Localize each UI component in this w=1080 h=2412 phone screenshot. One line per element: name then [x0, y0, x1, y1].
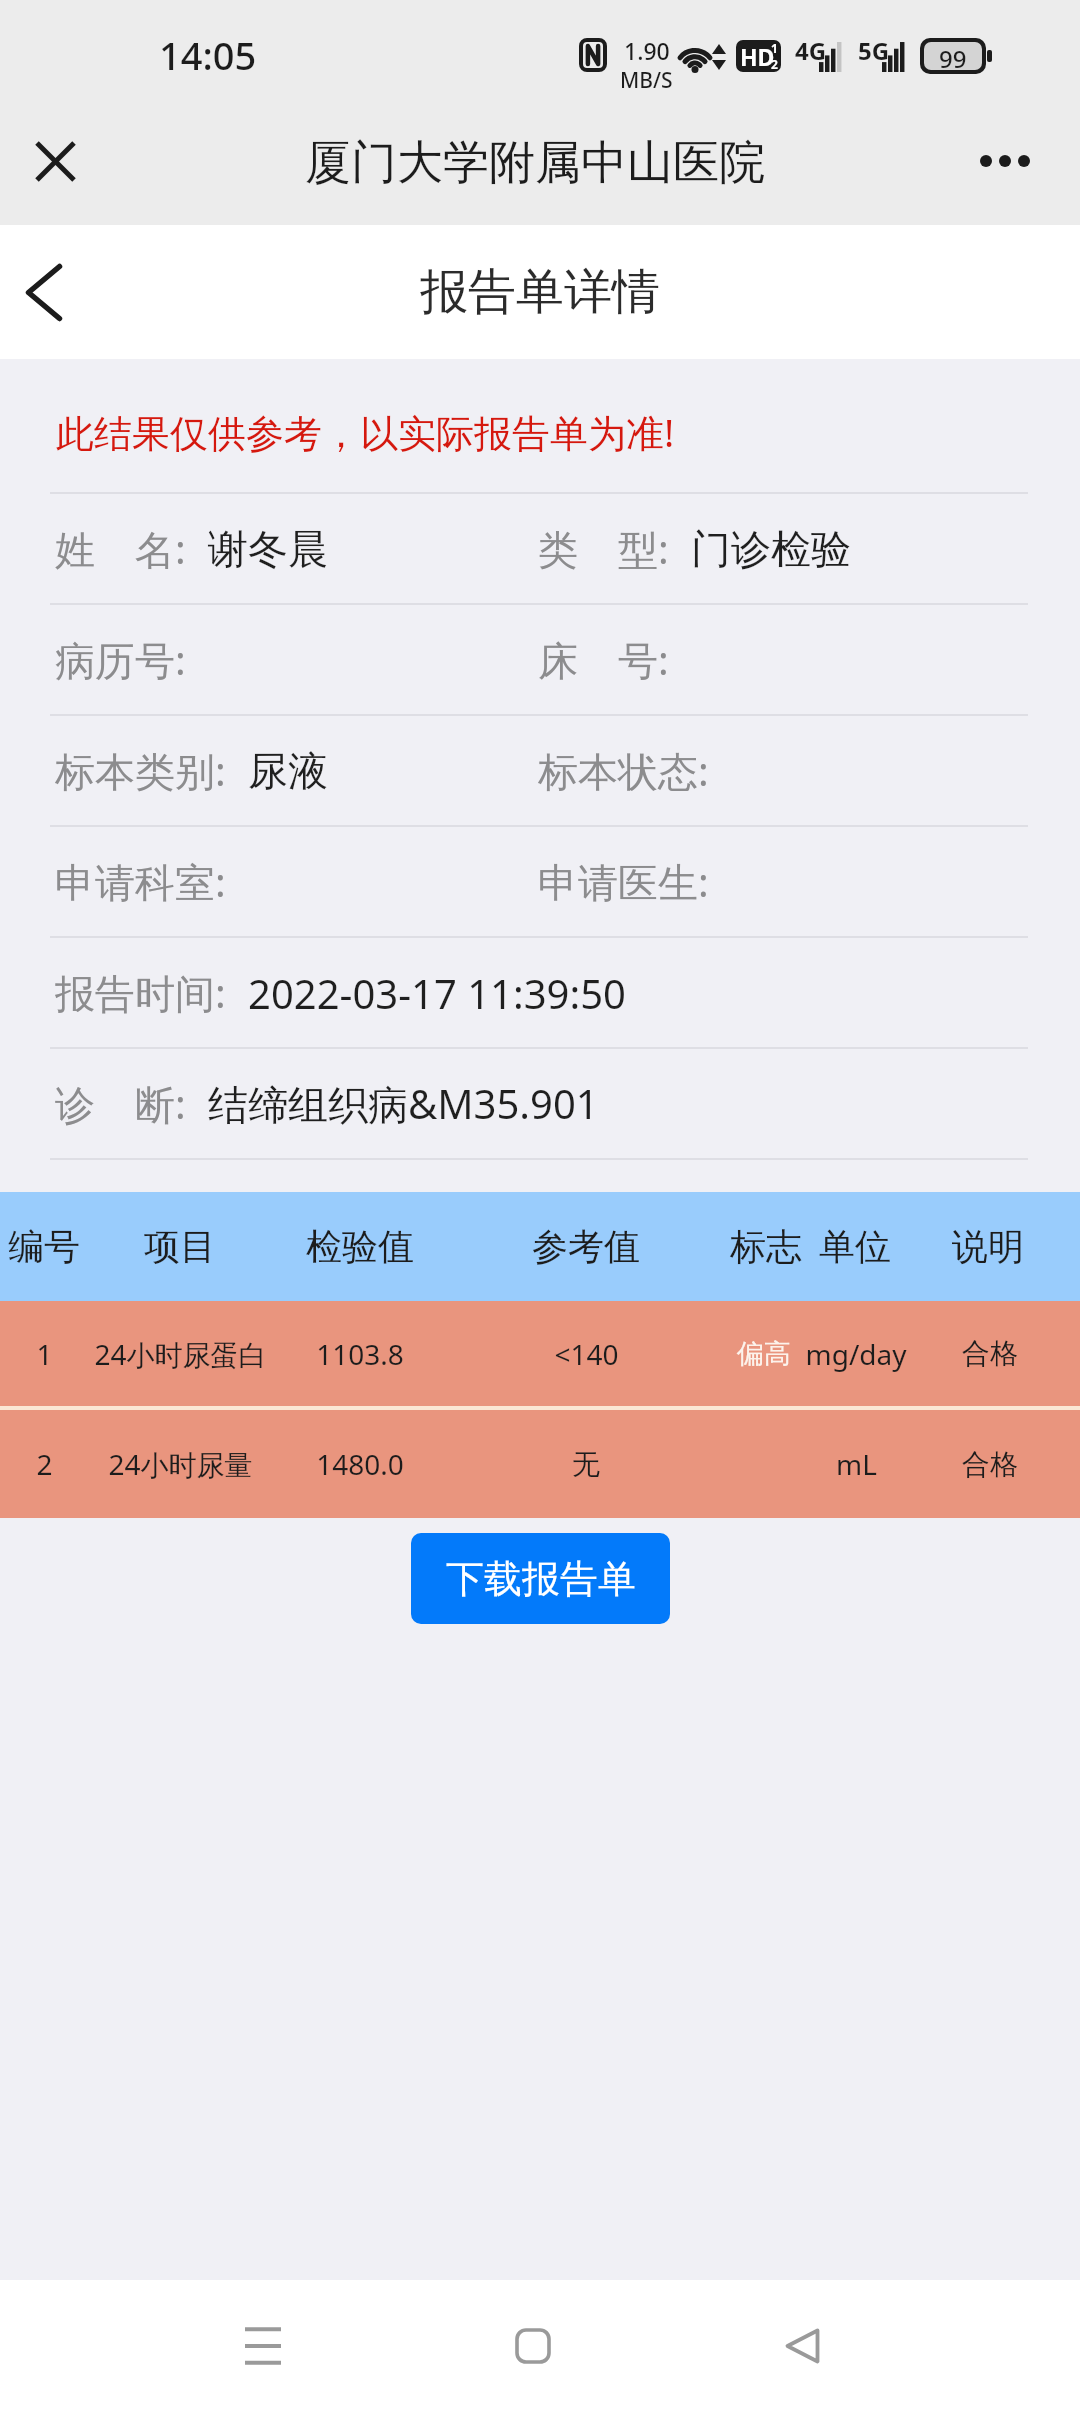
staticText: 单位 [819, 1224, 891, 1269]
staticText: 无 [572, 1447, 600, 1482]
button[interactable]: Back [0, 225, 88, 359]
staticText: 报告单详情 [0, 262, 1080, 322]
staticText: 99 [939, 42, 967, 70]
button[interactable]: Home [473, 2280, 593, 2412]
staticText: 标志 [730, 1224, 802, 1269]
button[interactable]: 下载报告单 [411, 1533, 670, 1624]
staticText: 4G [795, 34, 827, 67]
staticText: MB/S [620, 66, 673, 95]
staticText: 2 [771, 56, 778, 72]
button[interactable]: Recent apps [203, 2280, 323, 2412]
staticText: 病历号: [55, 632, 186, 687]
staticText: 合格 [962, 1447, 1018, 1482]
staticText: 床 号: [538, 632, 669, 687]
staticText: 5G [858, 34, 890, 67]
staticText: 申请医生: [538, 854, 709, 909]
staticText: 1103.8 [316, 1335, 404, 1373]
button[interactable]: More options [955, 111, 1055, 211]
staticText: 下载报告单 [446, 1555, 636, 1603]
staticText: 偏高 [737, 1337, 791, 1371]
staticText: 2022-03-17 11:39:50 [248, 966, 626, 1020]
staticText: 说明 [952, 1224, 1024, 1269]
staticText: 24小时尿量 [108, 1445, 253, 1483]
button[interactable]: Close [5, 111, 105, 211]
staticText: 1480.0 [316, 1445, 404, 1483]
staticText: 项目 [144, 1224, 216, 1269]
staticText: 编号 [8, 1224, 80, 1269]
staticText: 1 [36, 1335, 53, 1373]
staticText: 检验值 [306, 1224, 414, 1269]
staticText: 申请科室: [55, 854, 226, 909]
staticText: 报告时间: [55, 965, 226, 1020]
staticText: 诊 断: [55, 1076, 186, 1131]
staticText: 类 型: [538, 521, 669, 576]
staticText: 结缔组织病&M35.901 [208, 1076, 599, 1131]
staticText: HD [740, 41, 775, 72]
staticText: 24小时尿蛋白 [94, 1335, 267, 1373]
staticText: 1.90 [624, 35, 670, 66]
staticText: 14:05 [159, 29, 257, 81]
staticText: mL [836, 1445, 877, 1483]
staticText: 合格 [962, 1336, 1018, 1371]
button[interactable]: Back [742, 2280, 862, 2412]
staticText: 尿液 [248, 746, 328, 796]
staticText: 1 [771, 40, 778, 56]
staticText: 谢冬晨 [208, 524, 328, 574]
staticText: mg/day [805, 1335, 907, 1373]
staticText: 姓 名: [55, 521, 186, 576]
staticText: 标本状态: [538, 743, 709, 798]
staticText: 参考值 [532, 1224, 640, 1269]
staticText: 门诊检验 [691, 524, 851, 574]
staticText: <140 [554, 1335, 619, 1373]
staticText: 标本类别: [55, 743, 226, 798]
staticText: 2 [36, 1445, 53, 1483]
staticText: 此结果仅供参考，以实际报告单为准! [56, 406, 675, 458]
staticText: 厦门大学附属中山医院 [0, 134, 1075, 192]
